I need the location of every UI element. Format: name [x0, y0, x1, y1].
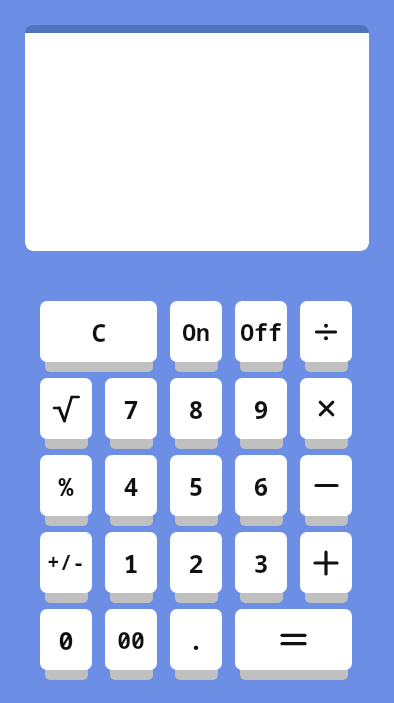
staticText: 9 [253, 392, 269, 426]
button[interactable]: . [170, 609, 222, 680]
staticText: 6 [253, 469, 269, 503]
button[interactable]: Divide [300, 301, 352, 372]
button[interactable]: On [170, 301, 222, 372]
button[interactable]: % [40, 455, 92, 526]
button[interactable]: 9 [235, 378, 287, 449]
staticText: On [182, 316, 210, 347]
button[interactable]: 5 [170, 455, 222, 526]
button[interactable]: 00 [105, 609, 157, 680]
button[interactable]: Minus [300, 455, 352, 526]
staticText: C [91, 315, 107, 349]
button[interactable]: 8 [170, 378, 222, 449]
button[interactable]: Off [235, 301, 287, 372]
staticText: 0 [58, 623, 74, 657]
button[interactable]: Square root [40, 378, 92, 449]
staticText: 4 [123, 469, 139, 503]
button[interactable]: 7 [105, 378, 157, 449]
staticText: 1 [123, 546, 139, 580]
button[interactable]: 1 [105, 532, 157, 603]
staticText: 2 [188, 546, 204, 580]
staticText: 00 [117, 624, 145, 655]
staticText: Off [240, 316, 282, 347]
button[interactable]: 0 [40, 609, 92, 680]
button[interactable]: Multiply [300, 378, 352, 449]
button[interactable]: +/- [40, 532, 92, 603]
staticText: . [188, 623, 204, 657]
button[interactable]: Equals [235, 609, 352, 680]
button[interactable]: 3 [235, 532, 287, 603]
staticText: 3 [253, 546, 269, 580]
staticText: 8 [188, 392, 204, 426]
button[interactable]: Plus [300, 532, 352, 603]
button[interactable]: C [40, 301, 157, 372]
button[interactable]: 4 [105, 455, 157, 526]
button[interactable]: 2 [170, 532, 222, 603]
staticText: % [58, 469, 74, 503]
staticText: 5 [188, 469, 204, 503]
staticText: +/- [47, 548, 85, 577]
staticText: 7 [123, 392, 139, 426]
button[interactable]: 6 [235, 455, 287, 526]
